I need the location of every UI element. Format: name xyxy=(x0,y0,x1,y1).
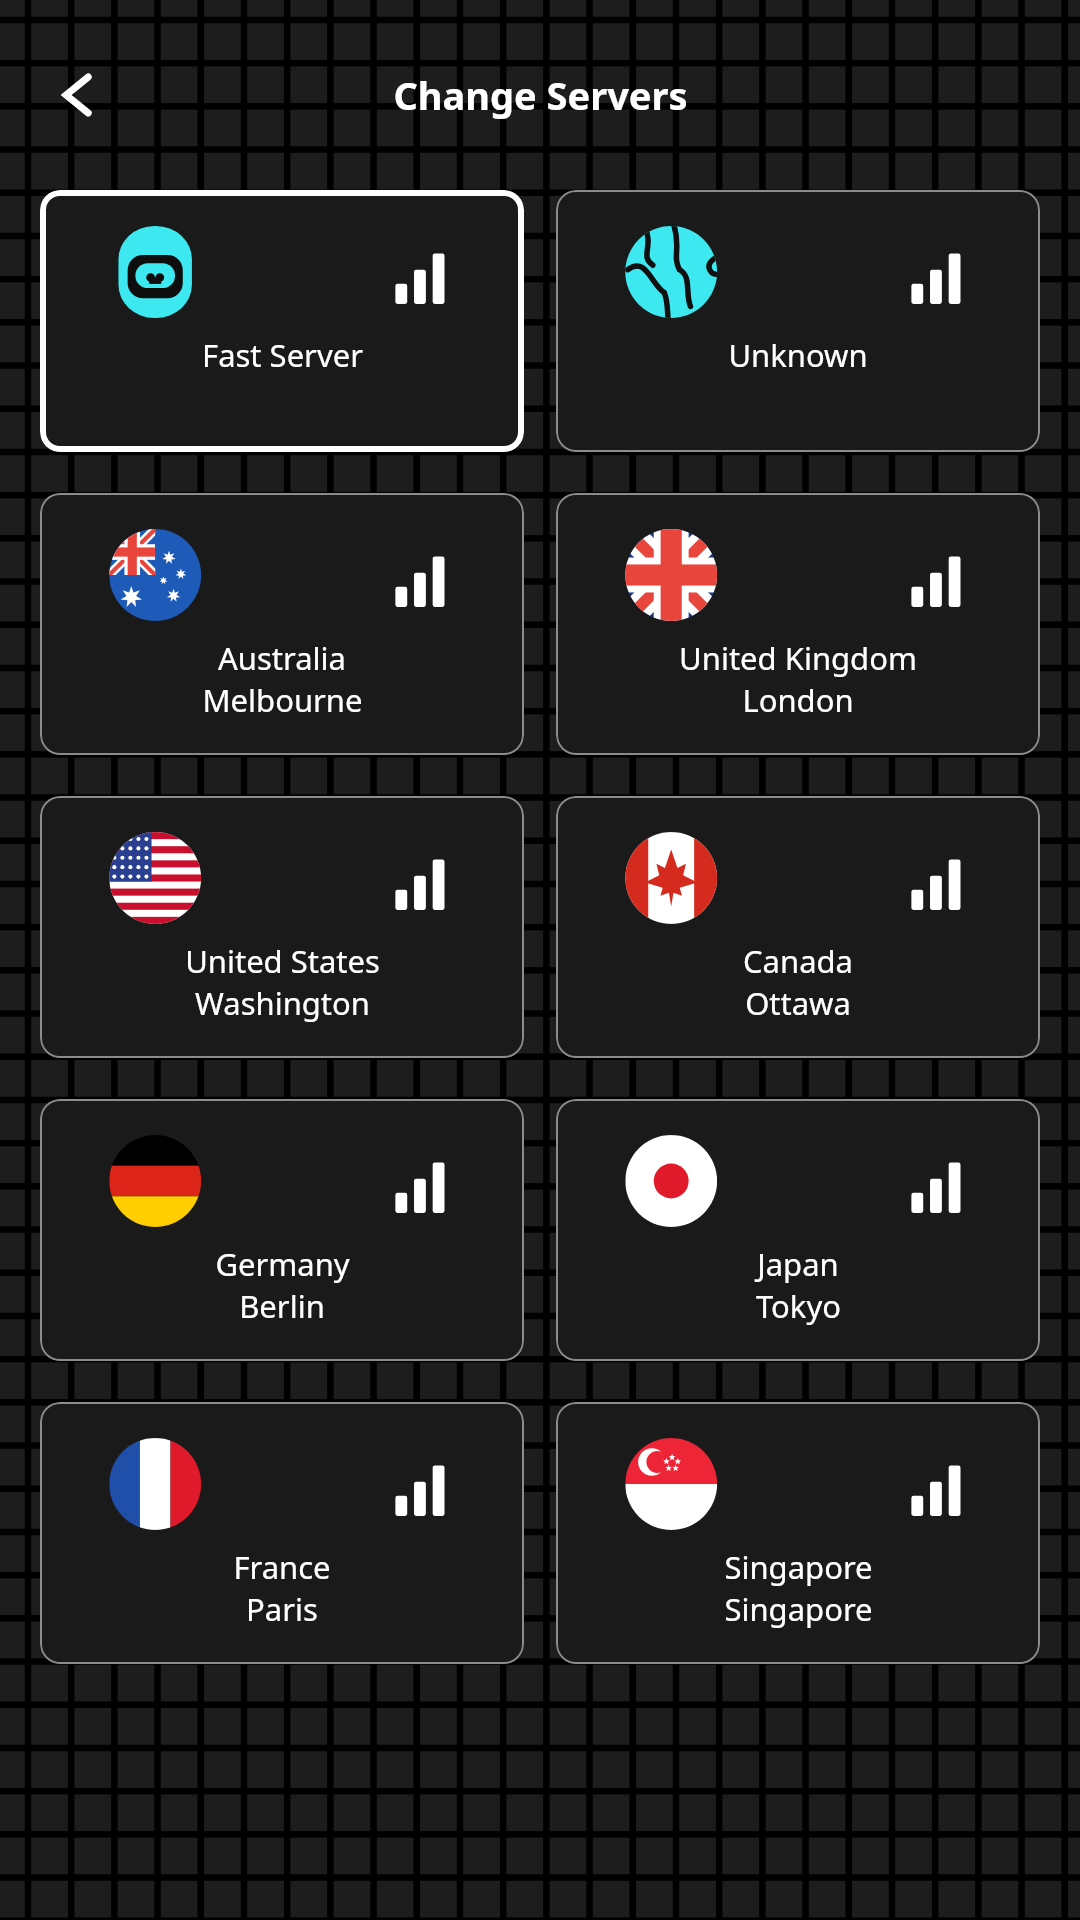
button[interactable]: Unknown xyxy=(556,190,1040,452)
staticText: Singapore xyxy=(724,1546,873,1588)
staticText: Canada xyxy=(743,940,853,982)
button[interactable]: United States xyxy=(40,796,524,1058)
button[interactable]: Canada xyxy=(556,796,1040,1058)
button[interactable]: Back xyxy=(34,53,118,137)
staticText: Ottawa xyxy=(745,982,851,1024)
button[interactable]: Australia xyxy=(40,493,524,755)
staticText: Paris xyxy=(246,1588,318,1630)
staticText: Fast Server xyxy=(202,334,363,376)
staticText: Unknown xyxy=(728,334,868,376)
staticText: Japan xyxy=(757,1243,839,1285)
button[interactable]: Fast Server xyxy=(40,190,524,452)
staticText: Singapore xyxy=(724,1588,873,1630)
button[interactable]: Germany xyxy=(40,1099,524,1361)
staticText: France xyxy=(233,1546,331,1588)
button[interactable]: United Kingdom xyxy=(556,493,1040,755)
button[interactable]: Singapore xyxy=(556,1402,1040,1664)
staticText: Melbourne xyxy=(202,679,363,721)
staticText: United States xyxy=(185,940,380,982)
staticText: London xyxy=(742,679,854,721)
staticText: Berlin xyxy=(239,1285,325,1327)
staticText: Change Servers xyxy=(393,69,688,121)
button[interactable]: France xyxy=(40,1402,524,1664)
staticText: Washington xyxy=(195,982,370,1024)
staticText: Germany xyxy=(215,1243,350,1285)
button[interactable]: Japan xyxy=(556,1099,1040,1361)
staticText: United Kingdom xyxy=(679,637,917,679)
staticText: Tokyo xyxy=(756,1285,841,1327)
staticText: Australia xyxy=(218,637,346,679)
